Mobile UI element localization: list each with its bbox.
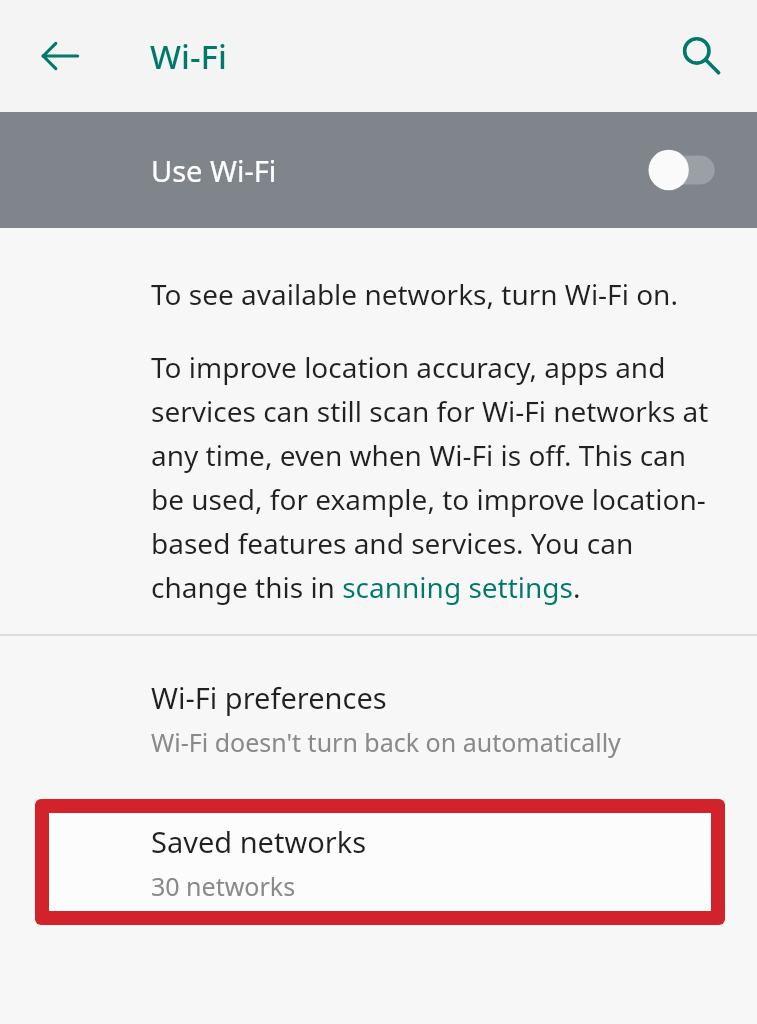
staticText: 30 networks <box>151 869 296 903</box>
staticText: Wi-Fi preferences <box>151 678 387 717</box>
button[interactable]: Back <box>28 24 92 88</box>
staticText: Use Wi-Fi <box>151 151 277 190</box>
staticText: Saved networks <box>151 822 367 861</box>
staticText: To see available networks, turn Wi-Fi on… <box>151 275 678 313</box>
button[interactable]: Use Wi-Fi toggle, off <box>639 142 717 198</box>
button[interactable]: Wi-Fi preferences <box>0 636 757 777</box>
button[interactable]: Use Wi-Fi <box>0 112 757 228</box>
button[interactable]: Saved networks <box>49 813 711 911</box>
button[interactable]: Search <box>669 24 733 88</box>
staticText: Wi-Fi <box>150 34 227 79</box>
staticText: Wi-Fi doesn't turn back on automatically <box>151 725 621 759</box>
staticText: To improve location accuracy, apps and s… <box>151 348 717 606</box>
